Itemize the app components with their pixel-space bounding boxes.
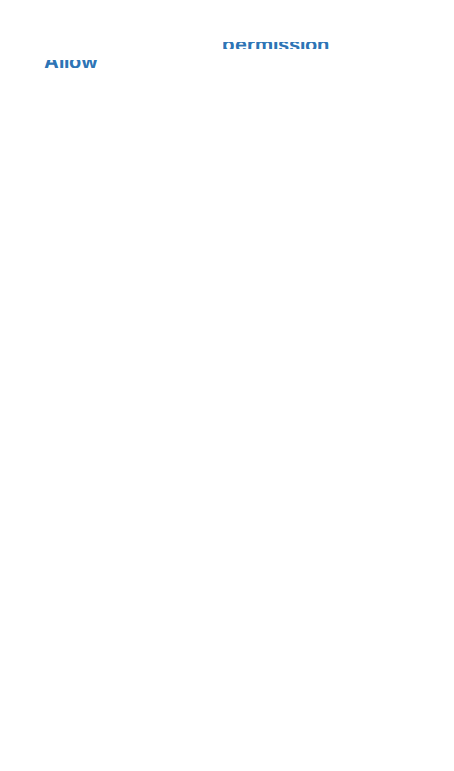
staticText: Allow microphone [44, 49, 160, 97]
staticText: permission [222, 32, 329, 56]
